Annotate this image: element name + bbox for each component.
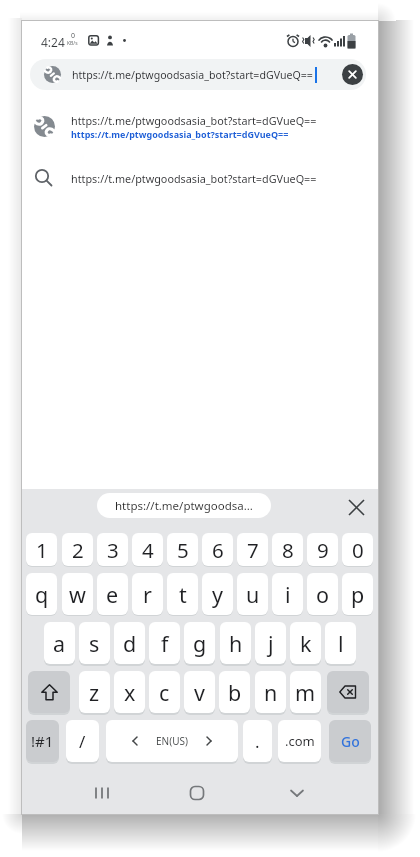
staticText: . — [255, 730, 260, 753]
staticText: Go — [341, 732, 360, 751]
button[interactable]: d — [114, 622, 145, 664]
button[interactable]: https://t.me/ptwgoodsa… — [97, 493, 271, 518]
staticText: m — [295, 678, 316, 707]
button[interactable]: 8 — [272, 533, 303, 566]
staticText: w — [69, 580, 86, 609]
button[interactable] — [28, 671, 70, 713]
staticText: b — [228, 678, 242, 707]
button[interactable]: l — [325, 622, 356, 664]
button[interactable]: 9 — [307, 533, 338, 566]
staticText: KB/s — [67, 40, 78, 47]
staticText: 6 — [212, 536, 224, 564]
staticText: a — [53, 629, 66, 658]
staticText: !#1 — [31, 731, 54, 751]
staticText: d — [123, 629, 137, 658]
button[interactable] — [94, 785, 110, 801]
staticText: l — [338, 629, 344, 658]
button[interactable]: i — [272, 573, 303, 615]
button[interactable]: .com — [278, 720, 321, 762]
staticText: 0 — [352, 536, 364, 564]
button[interactable]: 7 — [237, 533, 268, 566]
button[interactable]: w — [62, 573, 93, 615]
button[interactable]: u — [237, 573, 268, 615]
button[interactable]: b — [219, 671, 250, 713]
button[interactable] — [327, 671, 369, 713]
button[interactable]: Go — [329, 720, 371, 762]
staticText: 1 — [36, 536, 48, 564]
button[interactable]: k — [290, 622, 321, 664]
button[interactable]: https://t.me/ptwgoodsasia_bot?start=dGVu… — [22, 160, 378, 196]
staticText: 7 — [247, 536, 259, 564]
staticText: t — [179, 580, 187, 609]
staticText: 3 — [107, 536, 119, 564]
staticText: s — [89, 629, 100, 658]
button[interactable]: 2 — [62, 533, 93, 566]
button[interactable]: f — [149, 622, 180, 664]
staticText: 0 — [71, 31, 76, 41]
button[interactable]: g — [184, 622, 215, 664]
button[interactable]: z — [79, 671, 110, 713]
staticText: y — [212, 580, 223, 609]
button[interactable]: . — [243, 720, 272, 762]
staticText: i — [285, 580, 291, 609]
staticText: n — [264, 678, 278, 707]
button[interactable]: j — [255, 622, 286, 664]
button[interactable]: 3 — [97, 533, 128, 566]
staticText: 4 — [142, 536, 154, 564]
staticText: r — [143, 580, 152, 609]
button[interactable]: 6 — [202, 533, 233, 566]
staticText: c — [159, 678, 170, 707]
staticText: https://t.me/ptwgoodsasia_bot?start=dGVu… — [71, 128, 289, 140]
button[interactable]: q — [26, 573, 57, 615]
staticText: h — [229, 629, 243, 658]
button[interactable]: v — [184, 671, 215, 713]
staticText: g — [193, 629, 207, 658]
button[interactable]: m — [290, 671, 321, 713]
button[interactable] — [190, 785, 204, 801]
button[interactable]: / — [66, 720, 99, 762]
staticText: x — [124, 678, 136, 707]
button[interactable] — [342, 64, 363, 85]
button[interactable]: s — [79, 622, 110, 664]
button[interactable]: e — [97, 573, 128, 615]
staticText: 2 — [72, 536, 84, 564]
staticText: v — [194, 678, 205, 707]
button[interactable]: 0 — [342, 533, 373, 566]
staticText: 8 — [282, 536, 294, 564]
staticText: https://t.me/ptwgoodsasia_bot?start=dGVu… — [72, 68, 313, 82]
button[interactable]: 5 — [167, 533, 198, 566]
button[interactable]: p — [342, 573, 373, 615]
button[interactable]: 4 — [132, 533, 163, 566]
staticText: https://t.me/ptwgoodsasia_bot?start=dGVu… — [71, 113, 317, 128]
staticText: EN(US) — [156, 734, 188, 748]
button[interactable]: x — [114, 671, 145, 713]
button[interactable]: r — [132, 573, 163, 615]
button[interactable]: o — [307, 573, 338, 615]
staticText: 9 — [317, 536, 329, 564]
staticText: f — [161, 629, 169, 658]
button[interactable]: c — [149, 671, 180, 713]
button[interactable]: t — [167, 573, 198, 615]
button[interactable] — [348, 499, 365, 516]
button[interactable]: h — [220, 622, 251, 664]
button[interactable]: n — [255, 671, 286, 713]
staticText: 5 — [177, 536, 189, 564]
button[interactable]: https://t.me/ptwgoodsasia_bot?start=dGVu… — [22, 107, 378, 145]
button[interactable]: EN(US) — [106, 720, 238, 762]
button[interactable]: !#1 — [26, 720, 59, 762]
staticText: https://t.me/ptwgoodsa… — [115, 498, 253, 514]
button[interactable]: https://t.me/ptwgoodsasia_bot?start=dGVu… — [30, 59, 366, 90]
button[interactable] — [290, 785, 304, 801]
button[interactable]: y — [202, 573, 233, 615]
staticText: q — [35, 580, 49, 609]
staticText: u — [246, 580, 260, 609]
staticText: 4:24 — [41, 34, 65, 50]
staticText: p — [351, 580, 365, 609]
staticText: .com — [285, 732, 315, 750]
staticText: j — [268, 629, 274, 658]
staticText: o — [316, 580, 330, 609]
button[interactable]: 1 — [26, 533, 57, 566]
button[interactable]: a — [44, 622, 75, 664]
staticText: e — [106, 580, 119, 609]
staticText: k — [300, 629, 312, 658]
